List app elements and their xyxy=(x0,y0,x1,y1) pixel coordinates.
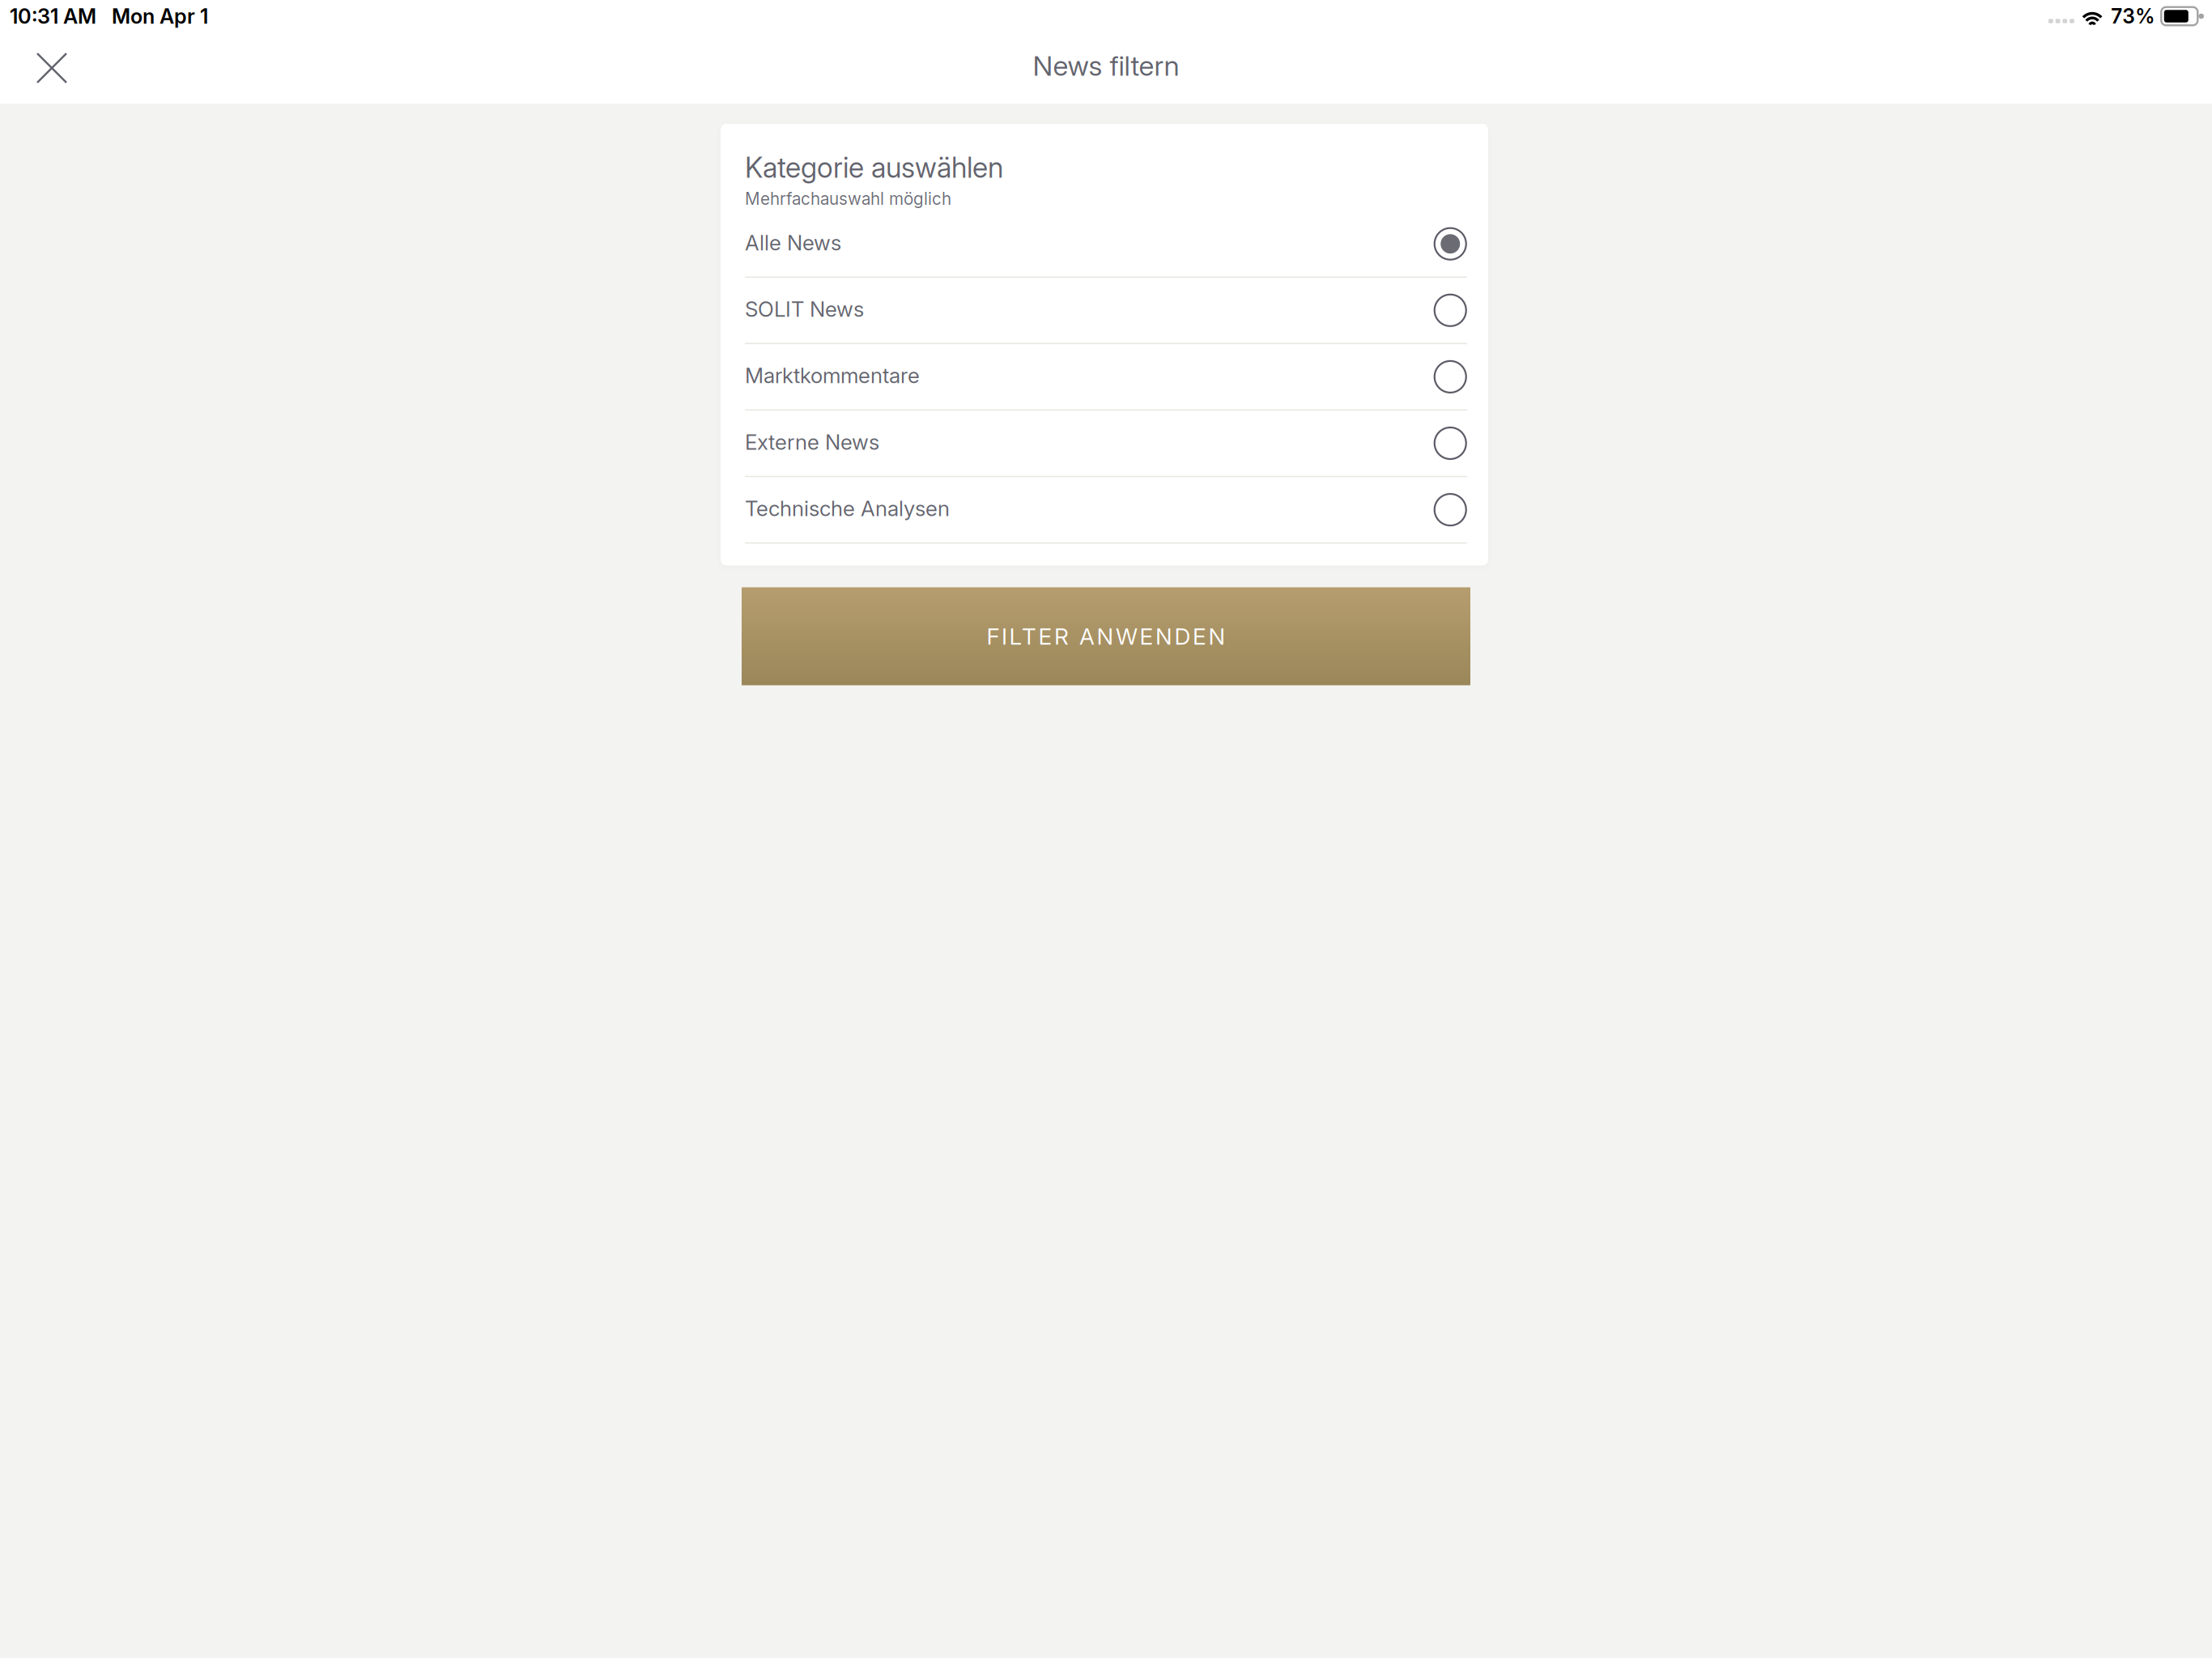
staticText: Technische Analysen xyxy=(745,496,950,521)
button[interactable]: FILTER ANWENDEN xyxy=(742,587,1470,685)
button[interactable]: Marktkommentare xyxy=(745,344,1467,411)
staticText: Kategorie auswählen xyxy=(745,151,1003,185)
staticText: Externe News xyxy=(745,429,879,455)
staticText: News filtern xyxy=(1033,49,1179,82)
button[interactable]: SOLIT News xyxy=(745,278,1467,344)
staticText: SOLIT News xyxy=(745,296,864,322)
button[interactable]: Technische Analysen xyxy=(745,477,1467,544)
staticText: Alle News xyxy=(745,230,841,255)
button[interactable]: Close xyxy=(21,37,83,99)
button[interactable]: Externe News xyxy=(745,411,1467,477)
staticText: Marktkommentare xyxy=(745,363,920,388)
staticText: Mehrfachauswahl möglich xyxy=(745,189,951,209)
staticText: FILTER ANWENDEN xyxy=(987,623,1225,650)
button[interactable]: Alle News xyxy=(745,211,1467,278)
staticText: 73% xyxy=(2111,4,2155,28)
staticText: Mon Apr 1 xyxy=(112,4,208,29)
staticText: 10:31 AM xyxy=(10,4,96,29)
